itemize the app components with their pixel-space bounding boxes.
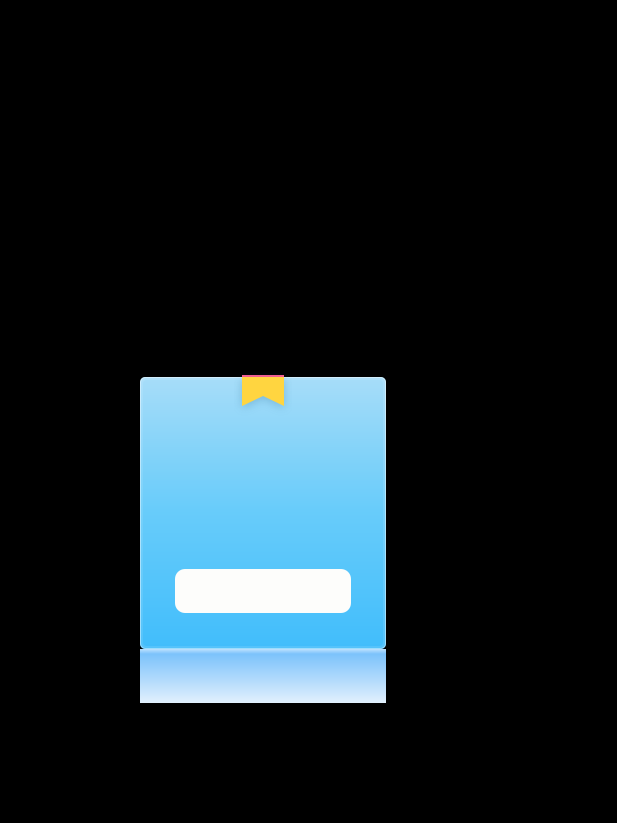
button[interactable]: Continue	[175, 569, 351, 613]
button[interactable]: Bookmark	[242, 375, 284, 406]
